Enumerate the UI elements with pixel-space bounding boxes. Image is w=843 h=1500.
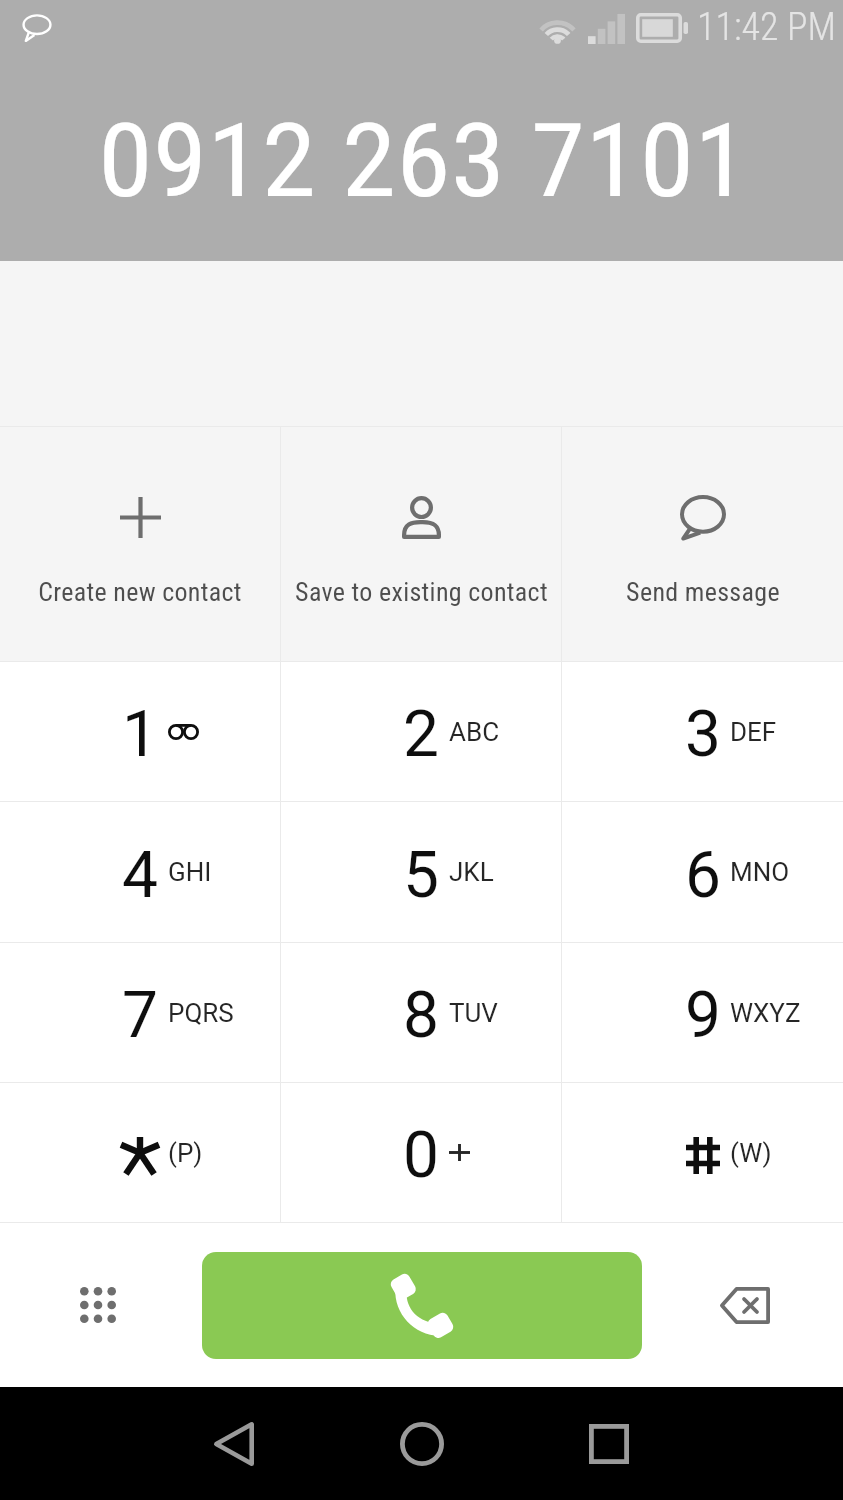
staticText: 9 [685, 978, 721, 1053]
staticText: Send message [626, 577, 780, 607]
button[interactable]: (W) [562, 1083, 843, 1222]
button[interactable]: Home [382, 1404, 462, 1484]
button[interactable]: 9 [562, 943, 843, 1082]
button[interactable]: Send message [562, 427, 843, 661]
staticText: 11:42 PM [697, 5, 836, 50]
staticText: GHI [168, 857, 212, 887]
button[interactable]: 8 [281, 943, 561, 1082]
button[interactable]: Back [194, 1404, 274, 1484]
staticText: (P) [168, 1138, 203, 1168]
staticText: ABC [449, 717, 500, 747]
staticText: 2 [403, 697, 439, 772]
staticText: 0 [403, 1118, 439, 1193]
staticText: PQRS [168, 998, 234, 1028]
button[interactable]: 7 [0, 943, 280, 1082]
button[interactable]: (P) [0, 1083, 280, 1222]
staticText: WXYZ [730, 998, 801, 1028]
staticText: (W) [730, 1138, 772, 1168]
staticText: DEF [730, 717, 777, 747]
staticText: TUV [449, 998, 498, 1028]
button[interactable]: Call [202, 1252, 642, 1359]
button[interactable]: 0 [281, 1083, 561, 1222]
staticText: JKL [449, 857, 494, 887]
staticText: MNO [730, 857, 790, 887]
button[interactable]: 3 [562, 662, 843, 801]
button[interactable]: Recents [569, 1404, 649, 1484]
button[interactable]: 4 [0, 802, 280, 942]
staticText: Create new contact [38, 577, 242, 607]
staticText: Save to existing contact [295, 577, 548, 607]
other: Messages [21, 13, 53, 43]
staticText: 8 [403, 978, 439, 1053]
staticText: 4 [122, 838, 158, 913]
button[interactable]: 5 [281, 802, 561, 942]
button[interactable]: Backspace [702, 1262, 788, 1348]
button[interactable]: Save to existing contact [281, 427, 561, 661]
button[interactable]: 1 [0, 662, 280, 801]
staticText: 6 [685, 838, 721, 913]
button[interactable]: Create new contact [0, 427, 280, 661]
staticText: 0912 263 7101 [98, 102, 749, 221]
button[interactable]: 6 [562, 802, 843, 942]
staticText: 3 [685, 697, 721, 772]
staticText: 5 [403, 838, 439, 913]
button[interactable]: 2 [281, 662, 561, 801]
button[interactable]: Show dialpad [55, 1262, 141, 1348]
staticText: 1 [122, 697, 158, 772]
staticText: 7 [122, 978, 158, 1053]
